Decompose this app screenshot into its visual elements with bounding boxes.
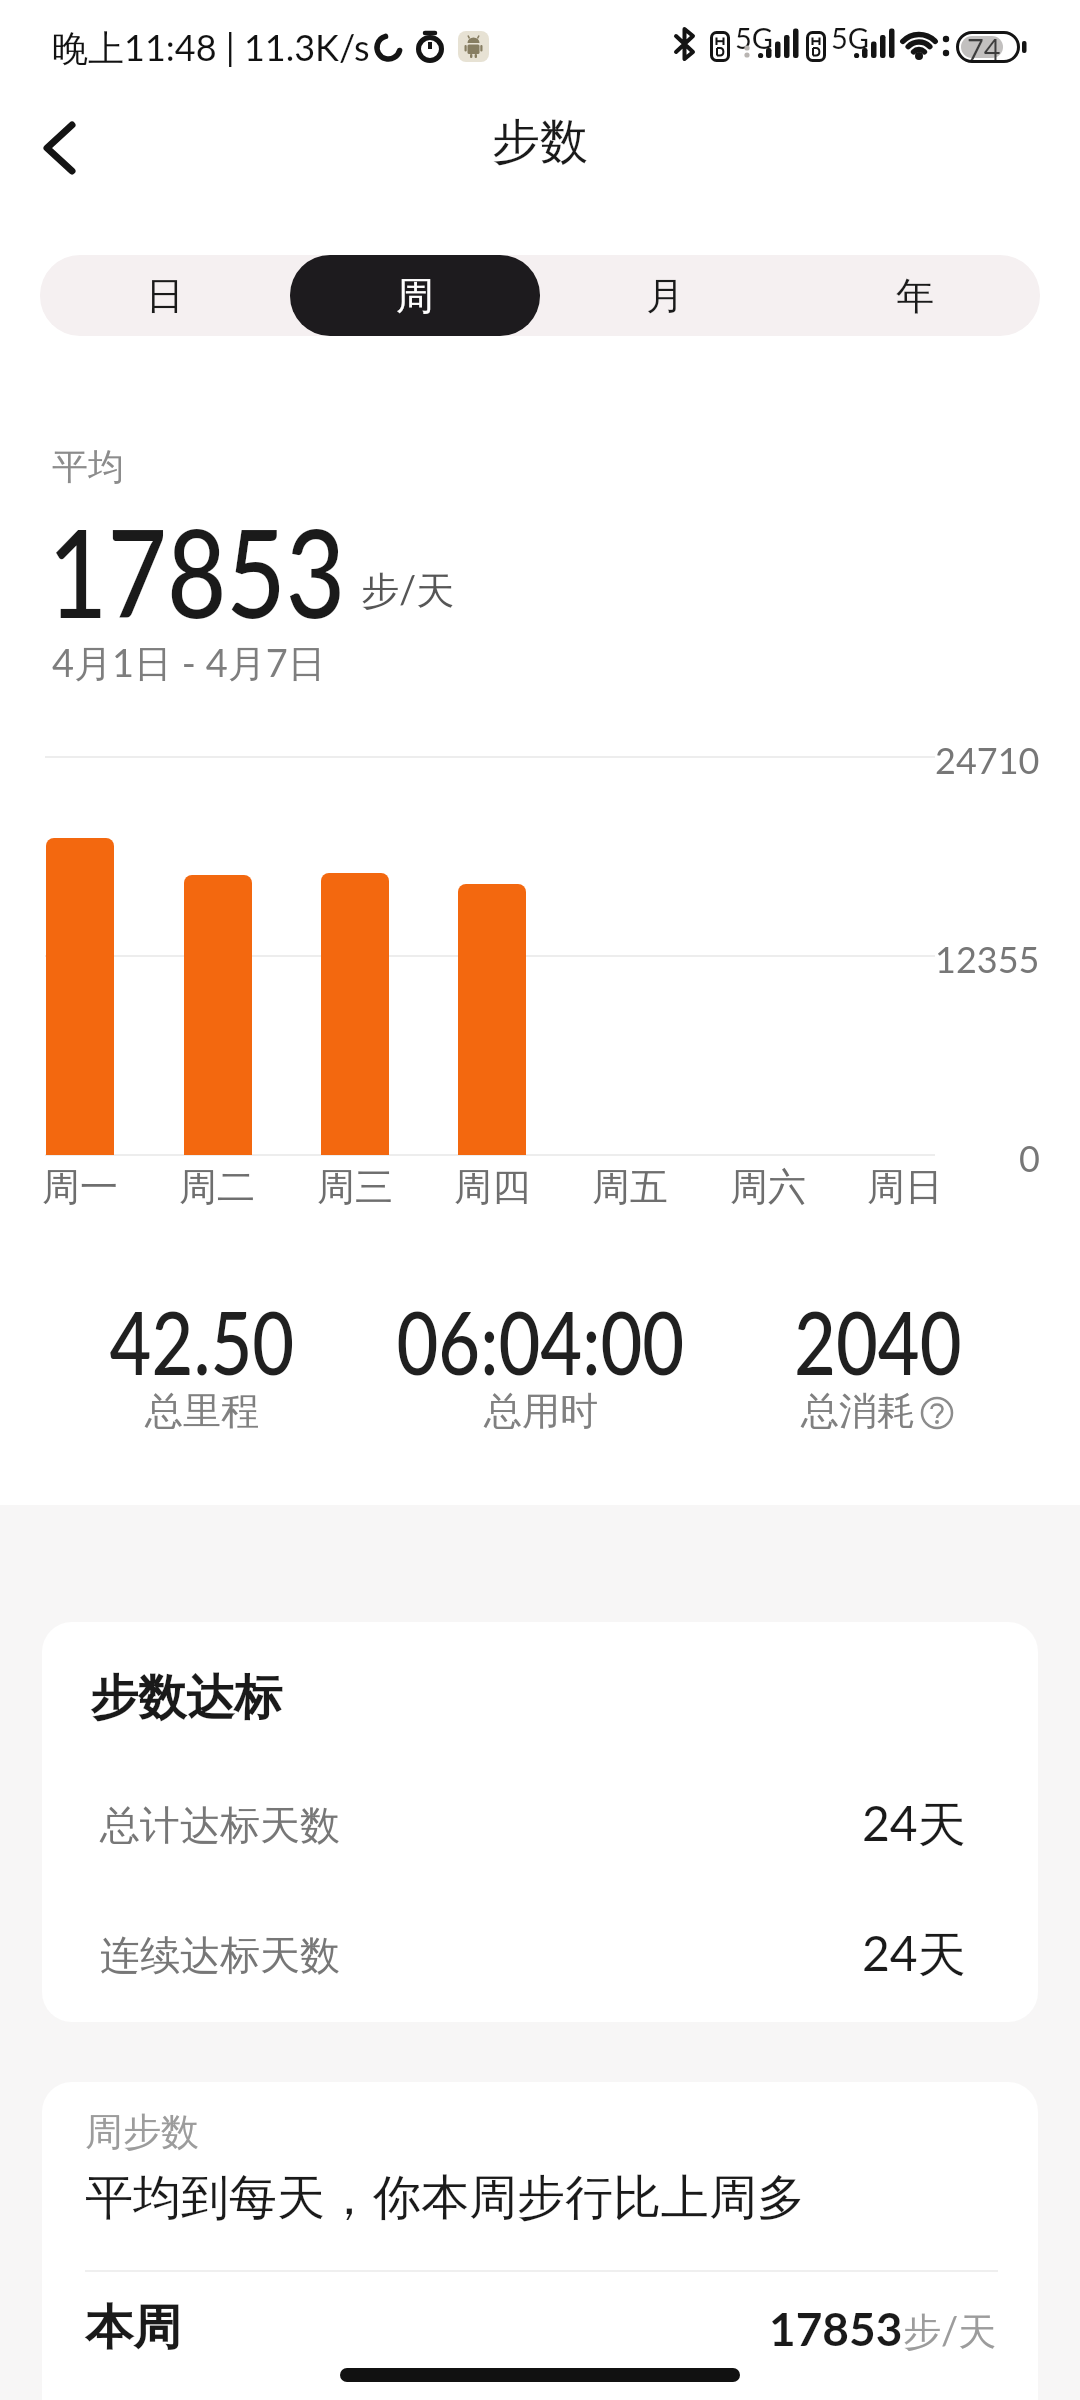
staticText: 步数达标: [90, 1668, 282, 1728]
staticText: 42.50: [110, 1290, 294, 1393]
staticText: 步/天: [361, 566, 455, 615]
staticText: 日: [146, 272, 184, 320]
staticText: 年: [896, 272, 934, 320]
staticText: 平均: [52, 444, 124, 489]
staticText: 晚上11:48 | 11.3K/s: [52, 25, 370, 71]
staticText: 周日: [867, 1163, 943, 1211]
staticText: 5G: [735, 20, 774, 55]
button[interactable]: 月: [540, 255, 790, 336]
staticText: 总消耗: [801, 1387, 915, 1435]
staticText: 周五: [592, 1163, 668, 1211]
staticText: 总用时: [484, 1387, 598, 1435]
staticText: 06:04:00: [396, 1290, 684, 1393]
staticText: 周: [396, 272, 434, 320]
button[interactable]: 步数达标: [42, 1622, 1038, 2022]
staticText: 17853: [48, 498, 345, 644]
staticText: 17853: [769, 2301, 903, 2356]
staticText: 总计达标天数: [100, 1800, 340, 1850]
staticText: 周一: [42, 1163, 118, 1211]
staticText: 4月1日 - 4月7日: [52, 639, 326, 688]
staticText: 周二: [179, 1163, 255, 1211]
button[interactable]: 年: [790, 255, 1040, 336]
staticText: 周步数: [85, 2108, 199, 2156]
staticText: 周三: [317, 1163, 393, 1211]
staticText: 平均到每天，你本周步行比上周多: [85, 2168, 805, 2228]
button[interactable]: 日: [40, 255, 290, 336]
staticText: 总里程: [145, 1387, 259, 1435]
button[interactable]: [20, 108, 100, 188]
staticText: 连续达标天数: [100, 1930, 340, 1980]
staticText: 本周: [85, 2298, 181, 2358]
staticText: 24天: [862, 1924, 966, 1986]
button[interactable]: 周: [290, 255, 540, 336]
staticText: 周四: [454, 1163, 530, 1211]
staticText: 2040: [794, 1290, 962, 1393]
button[interactable]: 周步数: [42, 2082, 1038, 2400]
staticText: 周六: [730, 1163, 806, 1211]
staticText: 0: [1019, 1136, 1040, 1179]
staticText: 步/天: [903, 2307, 997, 2356]
staticText: 步数: [492, 112, 588, 172]
staticText: 24天: [862, 1794, 966, 1856]
staticText: 12355: [935, 937, 1040, 980]
staticText: 月: [646, 272, 684, 320]
staticText: 24710: [935, 738, 1040, 781]
staticText: 74: [967, 31, 1001, 66]
staticText: 5G: [831, 20, 870, 55]
